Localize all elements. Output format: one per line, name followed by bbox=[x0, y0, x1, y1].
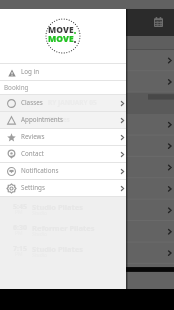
staticText: Settings bbox=[21, 183, 45, 192]
button[interactable]: Contact bbox=[0, 146, 126, 162]
button[interactable]: RY JANUARY 05 bbox=[0, 95, 126, 111]
staticText: MOVE bbox=[48, 33, 74, 45]
staticText: Reformer Pilates bbox=[32, 223, 95, 233]
staticText: Contact bbox=[21, 149, 44, 158]
staticText: 5:45 bbox=[13, 202, 27, 212]
button[interactable]: Reviews bbox=[0, 129, 126, 145]
staticText: Appointments bbox=[21, 115, 63, 124]
button[interactable]: Settings bbox=[0, 180, 126, 196]
staticText: Classes bbox=[21, 98, 43, 107]
button[interactable]: Notifications bbox=[0, 163, 126, 179]
staticText: Studio Pilates bbox=[32, 202, 84, 212]
staticText: Pilates bbox=[48, 115, 70, 124]
staticText: Log in bbox=[21, 67, 40, 76]
button[interactable]: Log in bbox=[0, 64, 126, 80]
staticText: MOVE bbox=[48, 24, 74, 36]
button[interactable]: Calendar bbox=[150, 14, 166, 30]
staticText: Notifications bbox=[21, 166, 59, 175]
staticText: Reviews bbox=[21, 132, 45, 141]
staticText: Studio Pilates bbox=[32, 244, 84, 254]
button[interactable]: Pilates bbox=[0, 112, 126, 128]
staticText: Booking bbox=[4, 83, 29, 92]
